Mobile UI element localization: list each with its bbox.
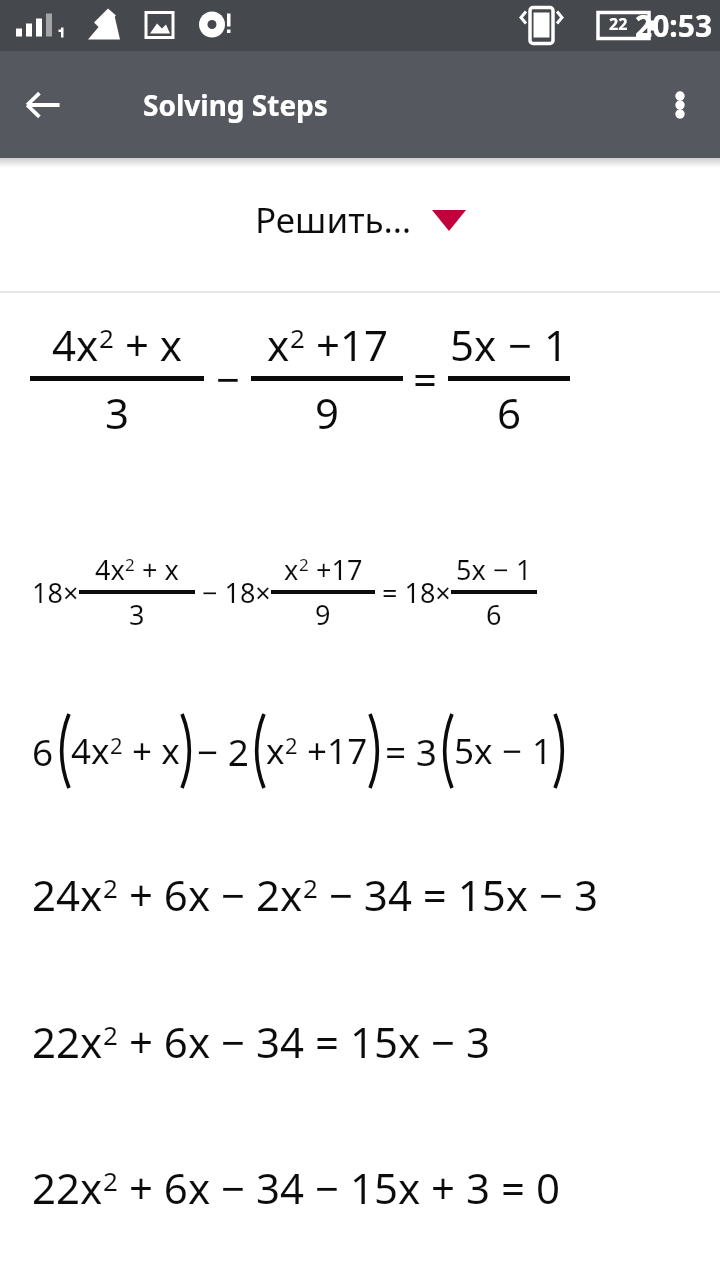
staticText: 20:53 [635,5,713,46]
staticText: 2 [103,870,118,905]
staticText: = 18× [375,574,451,611]
staticText: Solving Steps [143,86,328,124]
staticText: 4x [95,551,125,588]
staticText: 2 [103,1163,118,1198]
staticText: − [493,551,509,588]
staticText: 1 [533,316,568,373]
staticText: + x [123,727,180,775]
staticText: 1 [523,727,553,775]
staticText: 2 [303,870,318,905]
staticText: 5x [454,727,502,775]
staticText: +17 [309,551,363,588]
button[interactable]: More options [650,75,710,135]
staticText: − [502,727,523,775]
staticText: 4x [71,727,110,775]
staticText: 3 [129,596,145,633]
staticText: 2 [110,730,123,760]
staticText: 2 [285,730,298,760]
staticText: − [508,316,533,373]
staticText: − 18× [195,574,271,611]
staticText: − 2 [197,726,249,776]
staticText: 9 [315,384,340,441]
staticText: 24x [32,866,103,923]
staticText: +17 [305,316,388,373]
staticText: 2 [299,553,309,576]
staticText: +17 [298,727,368,775]
staticText: 3 [105,384,130,441]
staticText: 2 [99,320,114,355]
staticText: 22x [32,1159,103,1216]
staticText: 4x [52,316,99,373]
staticText: = [413,350,438,407]
staticText: 6 [486,596,502,633]
staticText: Решить… [255,196,412,244]
staticText: x [267,316,290,373]
staticText: − [216,350,241,407]
staticText: + x [135,551,179,588]
button[interactable]: Back [12,74,74,136]
button[interactable]: Решить… [0,196,720,244]
staticText: 5x [450,316,508,373]
staticText: x [284,551,299,588]
staticText: 5x [456,551,493,588]
staticText: = 3 [385,726,437,776]
staticText: + x [114,316,183,373]
staticText: + 6x − 34 = 15x − 3 [118,1013,491,1070]
staticText: 22x [32,1013,103,1070]
staticText: 18× [32,574,79,611]
staticText: 9 [315,596,331,633]
staticText: 1 [509,551,532,588]
staticText: + 6x − 2x [118,866,303,923]
staticText: − 34 = 15x − 3 [318,866,598,923]
staticText: 22 [609,13,628,35]
staticText: + 6x − 34 − 15x + 3 = 0 [118,1159,560,1216]
staticText: 6 [497,384,522,441]
staticText: 2 [290,320,305,355]
staticText: 2 [103,1017,118,1052]
staticText: 2 [125,553,135,576]
staticText: x [266,727,285,775]
staticText: 6 [32,726,54,776]
